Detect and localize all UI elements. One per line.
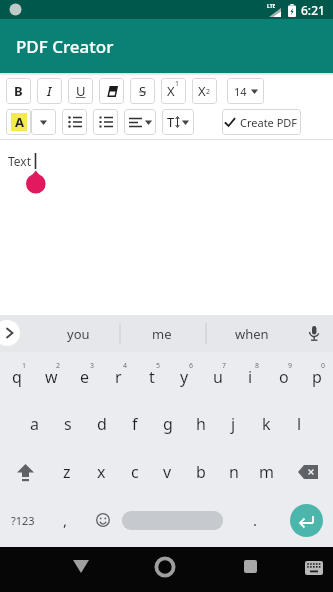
button[interactable] bbox=[0, 448, 50, 496]
button[interactable]: h bbox=[184, 400, 217, 448]
staticText: r bbox=[115, 366, 122, 388]
button[interactable]: m bbox=[250, 448, 283, 496]
button[interactable]: n bbox=[217, 448, 250, 496]
staticText: j bbox=[231, 413, 236, 435]
staticText: z bbox=[63, 461, 71, 483]
button[interactable]: you bbox=[43, 315, 113, 352]
staticText: 6 bbox=[189, 361, 194, 371]
staticText: a bbox=[30, 413, 39, 435]
button[interactable]: f bbox=[118, 400, 151, 448]
staticText: 5 bbox=[156, 361, 161, 371]
button[interactable]: d bbox=[85, 400, 118, 448]
staticText: U bbox=[76, 82, 86, 100]
button[interactable] bbox=[62, 109, 87, 135]
button[interactable]: . bbox=[223, 496, 287, 544]
staticText: B bbox=[14, 82, 23, 100]
button[interactable]: ?123 bbox=[0, 496, 46, 544]
staticText: 7 bbox=[222, 361, 227, 371]
button[interactable]: u bbox=[201, 352, 234, 400]
staticText: 2 bbox=[206, 87, 211, 97]
button[interactable] bbox=[122, 496, 223, 544]
button[interactable] bbox=[93, 109, 118, 135]
staticText: b bbox=[196, 461, 206, 483]
staticText: q bbox=[12, 366, 22, 388]
staticText: 3 bbox=[90, 361, 95, 371]
staticText: v bbox=[163, 461, 172, 483]
button[interactable]: p bbox=[300, 352, 333, 400]
staticText: o bbox=[279, 366, 289, 388]
button[interactable] bbox=[230, 547, 270, 592]
button[interactable] bbox=[31, 109, 56, 135]
button[interactable]: t bbox=[135, 352, 168, 400]
staticText: h bbox=[196, 413, 206, 435]
button[interactable] bbox=[99, 78, 124, 104]
staticText: f bbox=[132, 413, 138, 435]
button[interactable]: i bbox=[234, 352, 267, 400]
button[interactable]: B bbox=[6, 78, 31, 104]
staticText: PDF Creator bbox=[16, 35, 114, 58]
button[interactable]: , bbox=[46, 496, 84, 544]
staticText: p bbox=[312, 366, 322, 388]
button[interactable]: Create PDF bbox=[222, 109, 301, 135]
button[interactable] bbox=[296, 547, 332, 592]
staticText: 4 bbox=[123, 361, 128, 371]
staticText: Text bbox=[8, 153, 32, 169]
button[interactable]: z bbox=[50, 448, 84, 496]
staticText: x bbox=[97, 461, 106, 483]
staticText: me bbox=[152, 325, 172, 343]
button[interactable] bbox=[61, 547, 101, 592]
button[interactable]: e bbox=[68, 352, 102, 400]
button[interactable]: U bbox=[68, 78, 93, 104]
button[interactable]: j bbox=[217, 400, 250, 448]
button[interactable]: A bbox=[6, 109, 31, 135]
staticText: 2 bbox=[56, 361, 61, 371]
button[interactable]: b bbox=[184, 448, 217, 496]
button[interactable]: x bbox=[84, 448, 118, 496]
button[interactable]: S bbox=[130, 78, 155, 104]
button[interactable] bbox=[124, 109, 156, 135]
staticText: e bbox=[80, 366, 90, 388]
button[interactable]: g bbox=[151, 400, 184, 448]
button[interactable]: PDF Creator bbox=[0, 19, 333, 73]
button[interactable] bbox=[287, 496, 333, 544]
button[interactable]: l bbox=[283, 400, 316, 448]
button[interactable]: y bbox=[168, 352, 201, 400]
button[interactable]: 14 bbox=[227, 78, 264, 104]
staticText: g bbox=[163, 413, 173, 435]
button[interactable]: T bbox=[162, 109, 194, 135]
staticText: 6:21 bbox=[301, 2, 325, 18]
staticText: A bbox=[15, 113, 24, 131]
button[interactable] bbox=[84, 496, 122, 544]
staticText: s bbox=[64, 413, 72, 435]
button[interactable] bbox=[283, 448, 333, 496]
staticText: S bbox=[139, 82, 147, 100]
staticText: , bbox=[63, 510, 68, 530]
staticText: y bbox=[180, 366, 189, 388]
staticText: Create PDF bbox=[240, 115, 298, 130]
button[interactable]: I bbox=[37, 78, 62, 104]
button[interactable]: X bbox=[161, 78, 186, 104]
button[interactable]: s bbox=[51, 400, 85, 448]
staticText: 14 bbox=[234, 84, 247, 99]
button[interactable]: w bbox=[34, 352, 68, 400]
button[interactable]: when bbox=[217, 315, 287, 352]
button[interactable]: a bbox=[17, 400, 51, 448]
staticText: l bbox=[297, 413, 302, 435]
button[interactable]: c bbox=[118, 448, 151, 496]
staticText: I bbox=[47, 82, 52, 100]
button[interactable]: o bbox=[267, 352, 300, 400]
button[interactable]: me bbox=[127, 315, 197, 352]
button[interactable] bbox=[0, 320, 20, 346]
staticText: X bbox=[198, 82, 206, 100]
staticText: ?123 bbox=[11, 513, 35, 528]
button[interactable]: v bbox=[151, 448, 184, 496]
button[interactable] bbox=[145, 547, 185, 592]
button[interactable]: q bbox=[0, 352, 34, 400]
staticText: 8 bbox=[255, 361, 260, 371]
button[interactable]: r bbox=[102, 352, 135, 400]
button[interactable]: Text bbox=[0, 142, 333, 315]
button[interactable]: X bbox=[192, 78, 217, 104]
staticText: 9 bbox=[288, 361, 293, 371]
button[interactable] bbox=[300, 320, 327, 347]
button[interactable]: k bbox=[250, 400, 283, 448]
